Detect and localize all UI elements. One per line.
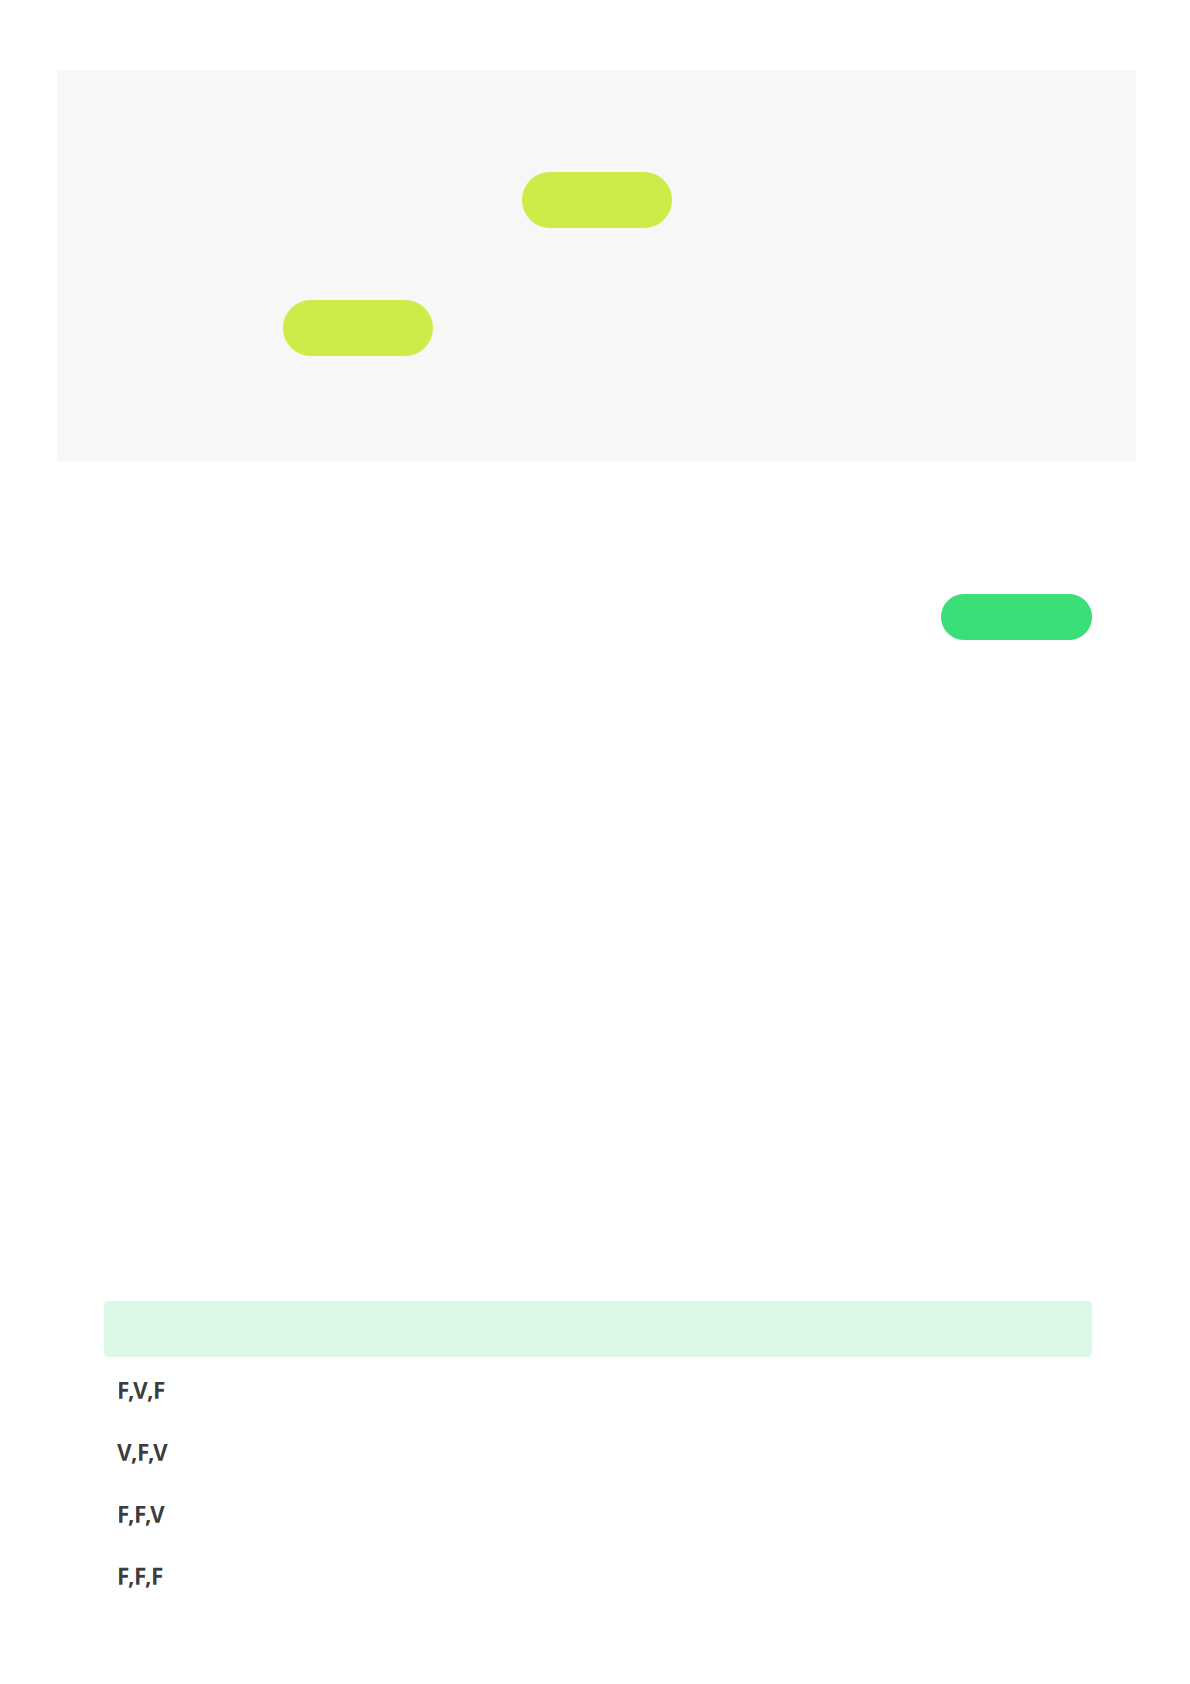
staticText: F,F,V: [117, 1499, 165, 1529]
button[interactable]: V,F,V: [104, 1419, 1092, 1481]
button[interactable]: Add: [941, 594, 1092, 640]
button[interactable]: F,F,V: [104, 1481, 1092, 1543]
button[interactable]: F,V,F: [104, 1357, 1092, 1419]
button[interactable]: F,F,F: [104, 1543, 1092, 1605]
staticText: V,F,V: [117, 1437, 168, 1467]
staticText: F,F,F: [117, 1561, 163, 1591]
staticText: F,V,F: [117, 1375, 165, 1405]
button[interactable]: Secondary action: [283, 300, 433, 356]
button[interactable]: Primary action: [522, 172, 672, 228]
